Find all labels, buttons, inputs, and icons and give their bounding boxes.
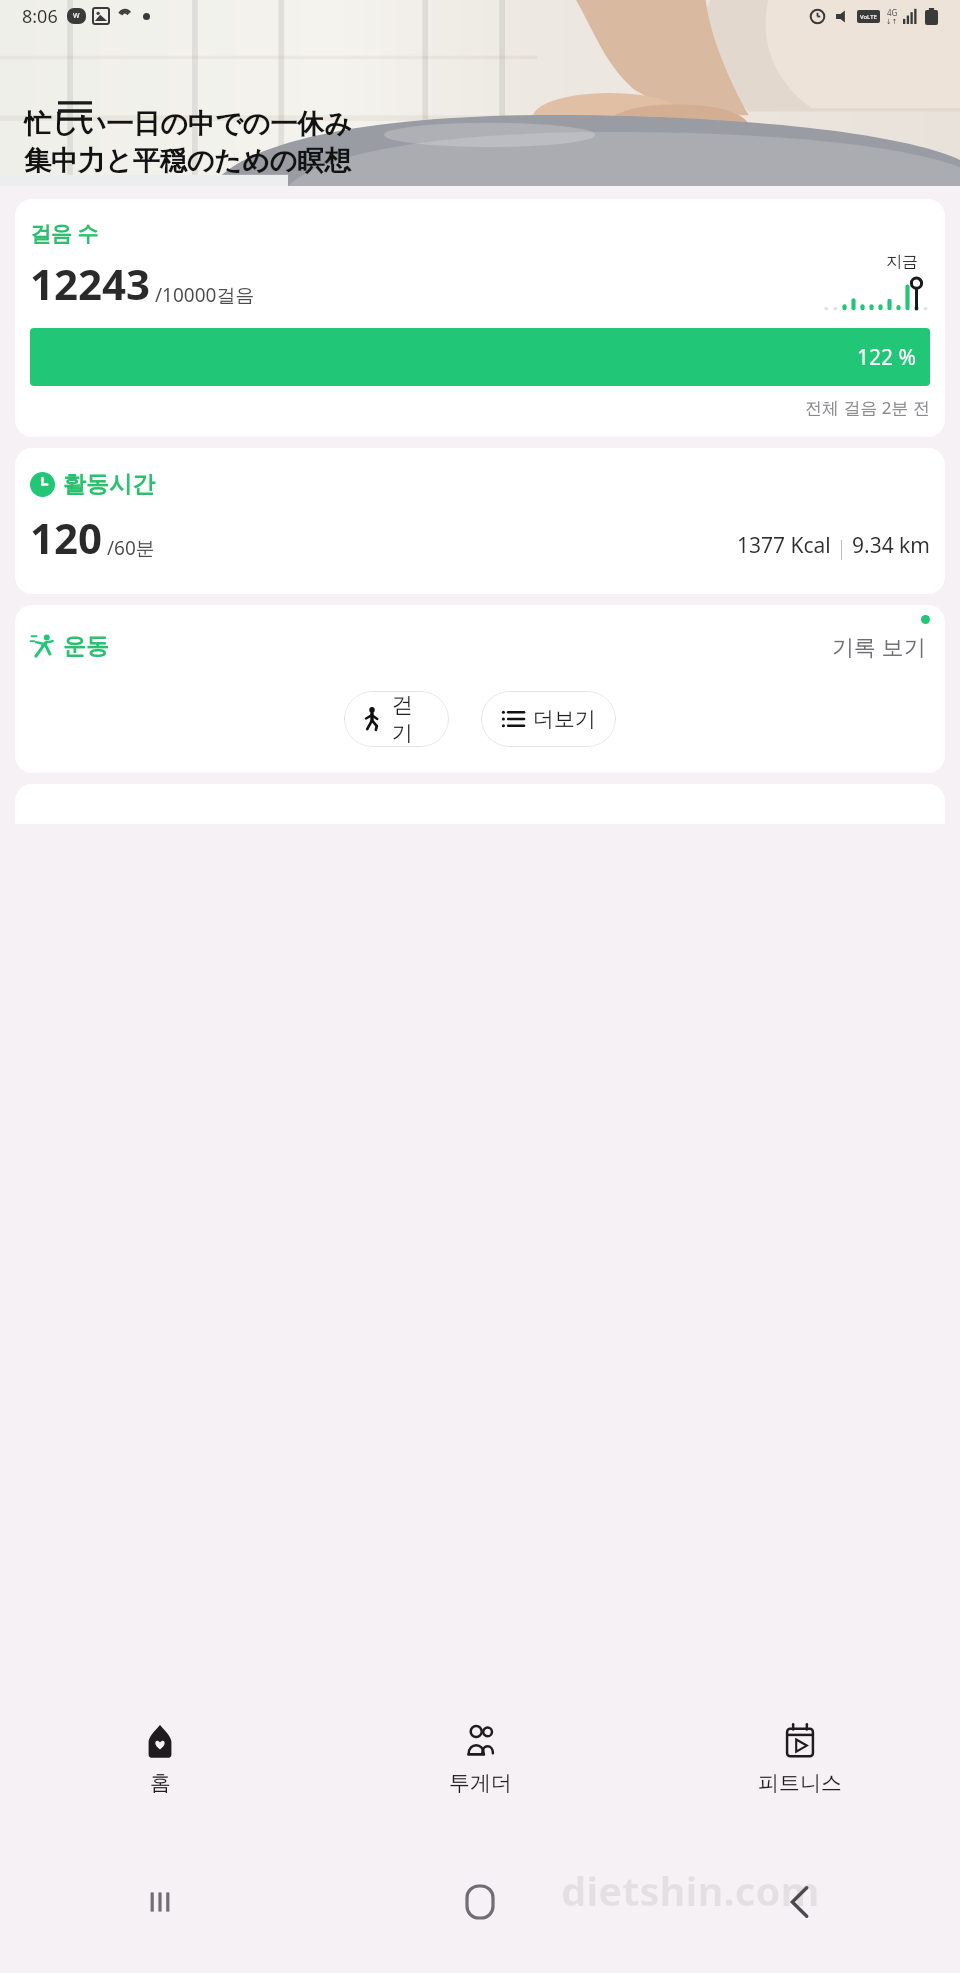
button[interactable]: 투게더 [320, 1687, 640, 1830]
staticText: 120 [30, 509, 103, 566]
button[interactable]: 걷기 [344, 691, 449, 747]
staticText: 4G [887, 7, 898, 18]
staticText: 8:06 [22, 4, 58, 29]
button[interactable]: 더보기 [481, 691, 616, 747]
staticText: dietshin.com [561, 1863, 820, 1917]
staticText: W [73, 11, 80, 21]
staticText: 9.34 km [852, 531, 930, 560]
staticText: 운동 [63, 632, 109, 661]
button[interactable]: 피트니스 [640, 1687, 960, 1830]
staticText: ↓↑ [886, 18, 898, 26]
staticText: 集中力と平穏のための瞑想 [24, 144, 352, 178]
button[interactable]: 활동시간 [15, 448, 945, 594]
staticText: 1377 Kcal [737, 531, 831, 560]
staticText: /60분 [107, 535, 155, 561]
staticText: 전체 걸음 2분 전 [30, 396, 930, 419]
button[interactable]: Menu [52, 88, 98, 134]
staticText: VoLTE [860, 13, 877, 21]
staticText: 걸음 수 [30, 219, 99, 248]
button[interactable]: Back [640, 1830, 960, 1973]
staticText: 피트니스 [758, 1770, 842, 1796]
button[interactable]: 기록 보기 [828, 627, 930, 665]
button[interactable]: Recents [0, 1830, 320, 1973]
staticText: /10000걸음 [155, 282, 255, 308]
staticText: 122 % [857, 343, 916, 372]
button[interactable]: 홈 [0, 1687, 320, 1830]
staticText: 지금 [886, 252, 918, 272]
button[interactable]: 운동 [15, 605, 945, 773]
staticText: 활동시간 [63, 470, 155, 499]
staticText: 12243 [30, 255, 151, 312]
button[interactable]: Home [320, 1830, 640, 1973]
staticText: 투게더 [449, 1770, 512, 1796]
button[interactable]: 걸음 수 [15, 199, 945, 437]
staticText: 더보기 [533, 706, 596, 732]
staticText: 홈 [150, 1770, 171, 1796]
staticText: 忙しい一日の中での一休み [24, 107, 352, 141]
staticText: 걷기 [392, 692, 433, 746]
